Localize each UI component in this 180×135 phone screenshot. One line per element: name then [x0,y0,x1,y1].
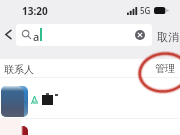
staticText: A [31,92,39,107]
button[interactable]: 管理 [150,59,180,78]
staticText: 13:20 [22,4,48,18]
staticText: a [33,29,40,44]
staticText: 取消 [157,30,179,44]
button[interactable]: 取消 [155,26,180,48]
staticText: 管理 [155,62,175,75]
button[interactable]: A [0,78,180,119]
staticText: 5G [140,5,151,16]
button[interactable]: a [16,24,152,46]
staticText: 联系人 [4,63,34,76]
button[interactable]: Back [0,24,16,45]
button[interactable]: Clear text [131,26,149,44]
